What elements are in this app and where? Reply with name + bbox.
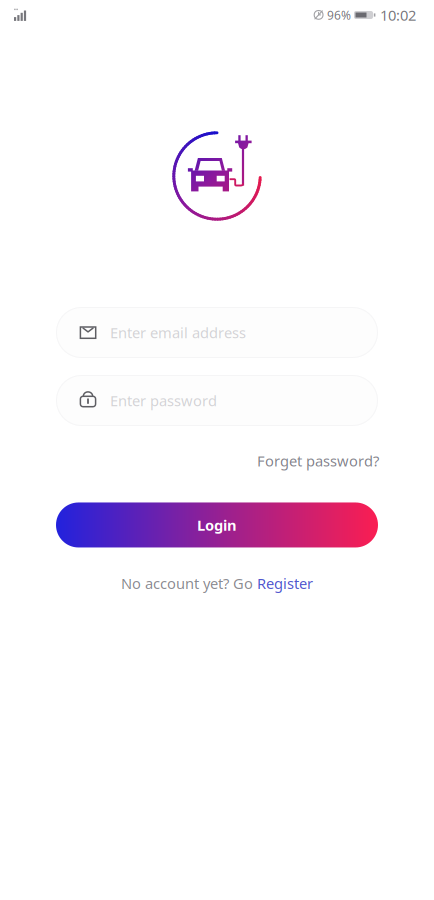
button[interactable]: Register — [257, 573, 313, 593]
staticText: Login — [197, 515, 237, 535]
button[interactable]: Forget password? — [257, 448, 379, 473]
staticText: No account yet? Go — [121, 573, 257, 593]
staticText: Enter email address — [110, 323, 246, 342]
staticText: 96% — [327, 7, 351, 23]
staticText: Register — [257, 573, 313, 593]
button[interactable]: Login — [56, 502, 378, 547]
staticText: 10:02 — [380, 5, 416, 25]
staticText: Enter password — [110, 391, 217, 410]
staticText: Forget password? — [257, 451, 379, 470]
